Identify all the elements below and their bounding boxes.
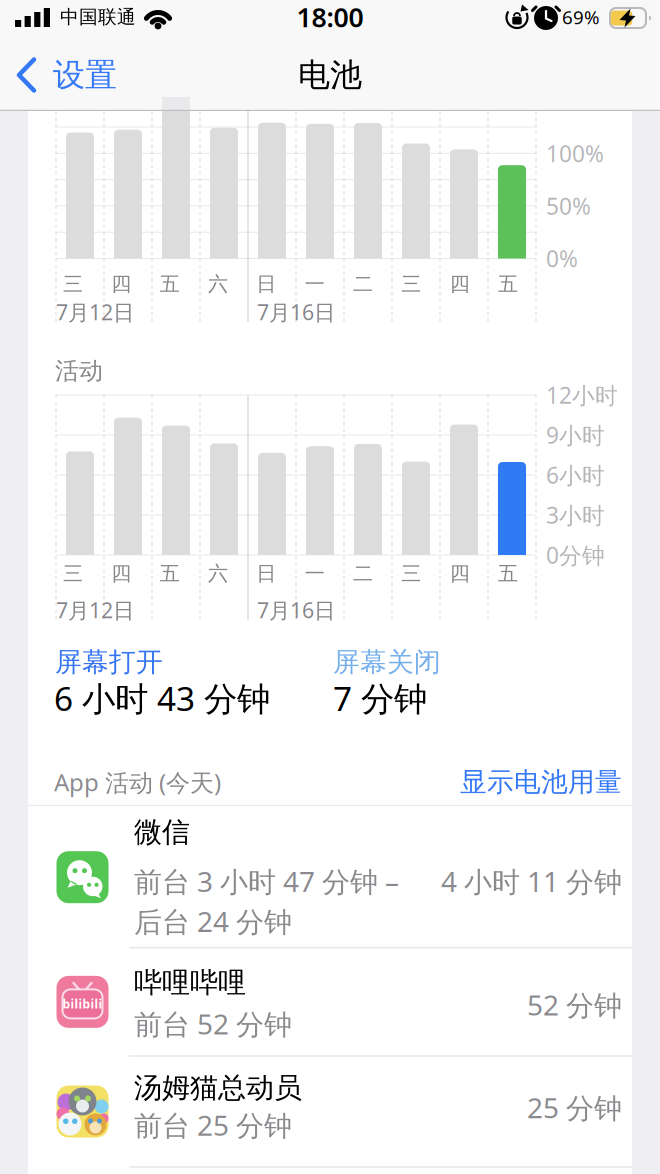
staticText: 五 [160, 272, 180, 296]
button[interactable]: bilibili [28, 948, 632, 1056]
staticText: 52 分钟 [527, 986, 622, 1023]
staticText: 三 [401, 561, 421, 586]
staticText: 前台 52 分钟 [134, 1005, 292, 1042]
staticText: 屏幕打开 [55, 646, 163, 678]
staticText: 7月16日 [257, 298, 335, 326]
staticText: 69% [562, 5, 600, 29]
staticText: 50% [546, 191, 591, 221]
staticText: 汤姆猫总动员 [134, 1071, 302, 1105]
staticText: 显示电池用量 [460, 766, 622, 798]
staticText: 6小时 [546, 460, 605, 490]
staticText: 4 小时 11 分钟 [441, 863, 622, 900]
button[interactable]: 微信 [28, 806, 632, 948]
staticText: 0% [546, 243, 578, 273]
staticText: 一 [305, 272, 325, 296]
staticText: 电池 [298, 55, 362, 95]
button[interactable]: 显示电池用量 [402, 762, 622, 802]
staticText: 日 [256, 561, 276, 586]
staticText: 12小时 [546, 380, 618, 410]
staticText: 中国联通 [60, 5, 136, 28]
staticText: 0分钟 [546, 540, 605, 570]
staticText: 三 [63, 272, 83, 296]
staticText: 6 小时 43 分钟 [54, 676, 270, 720]
staticText: 7月12日 [56, 596, 134, 624]
staticText: 100% [546, 138, 604, 168]
staticText: 7 分钟 [333, 676, 427, 720]
staticText: 18:00 [296, 0, 363, 35]
staticText: 25 分钟 [527, 1089, 622, 1126]
staticText: 日 [256, 272, 276, 296]
staticText: 前台 3 小时 47 分钟 – [134, 863, 399, 900]
staticText: 设置 [53, 55, 117, 95]
staticText: 六 [208, 272, 228, 296]
staticText: 四 [111, 272, 131, 296]
staticText: 五 [160, 561, 180, 586]
staticText: 三 [401, 272, 421, 296]
staticText: 7月16日 [257, 596, 335, 624]
staticText: 3小时 [546, 500, 605, 530]
staticText: 四 [111, 561, 131, 586]
staticText: 四 [450, 561, 470, 586]
staticText: 活动 [55, 356, 103, 386]
staticText: 一 [305, 561, 325, 586]
staticText: 二 [353, 561, 373, 586]
staticText: 屏幕关闭 [333, 646, 441, 678]
staticText: 前台 25 分钟 [134, 1106, 292, 1144]
staticText: 五 [498, 561, 518, 586]
staticText: 四 [450, 272, 470, 296]
staticText: App 活动 (今天) [54, 766, 221, 798]
staticText: 微信 [134, 815, 190, 849]
staticText: 后台 24 分钟 [134, 903, 292, 940]
button[interactable]: 汤姆猫总动员 [28, 1056, 632, 1167]
staticText: 五 [498, 272, 518, 296]
staticText: 7月12日 [56, 298, 134, 326]
staticText: 9小时 [546, 420, 605, 450]
staticText: bilibili [62, 996, 102, 1012]
staticText: 哔哩哔哩 [134, 965, 246, 1000]
staticText: 二 [353, 272, 373, 296]
staticText: 三 [63, 561, 83, 586]
staticText: 六 [208, 561, 228, 586]
button[interactable]: 返回设置 [10, 52, 140, 97]
